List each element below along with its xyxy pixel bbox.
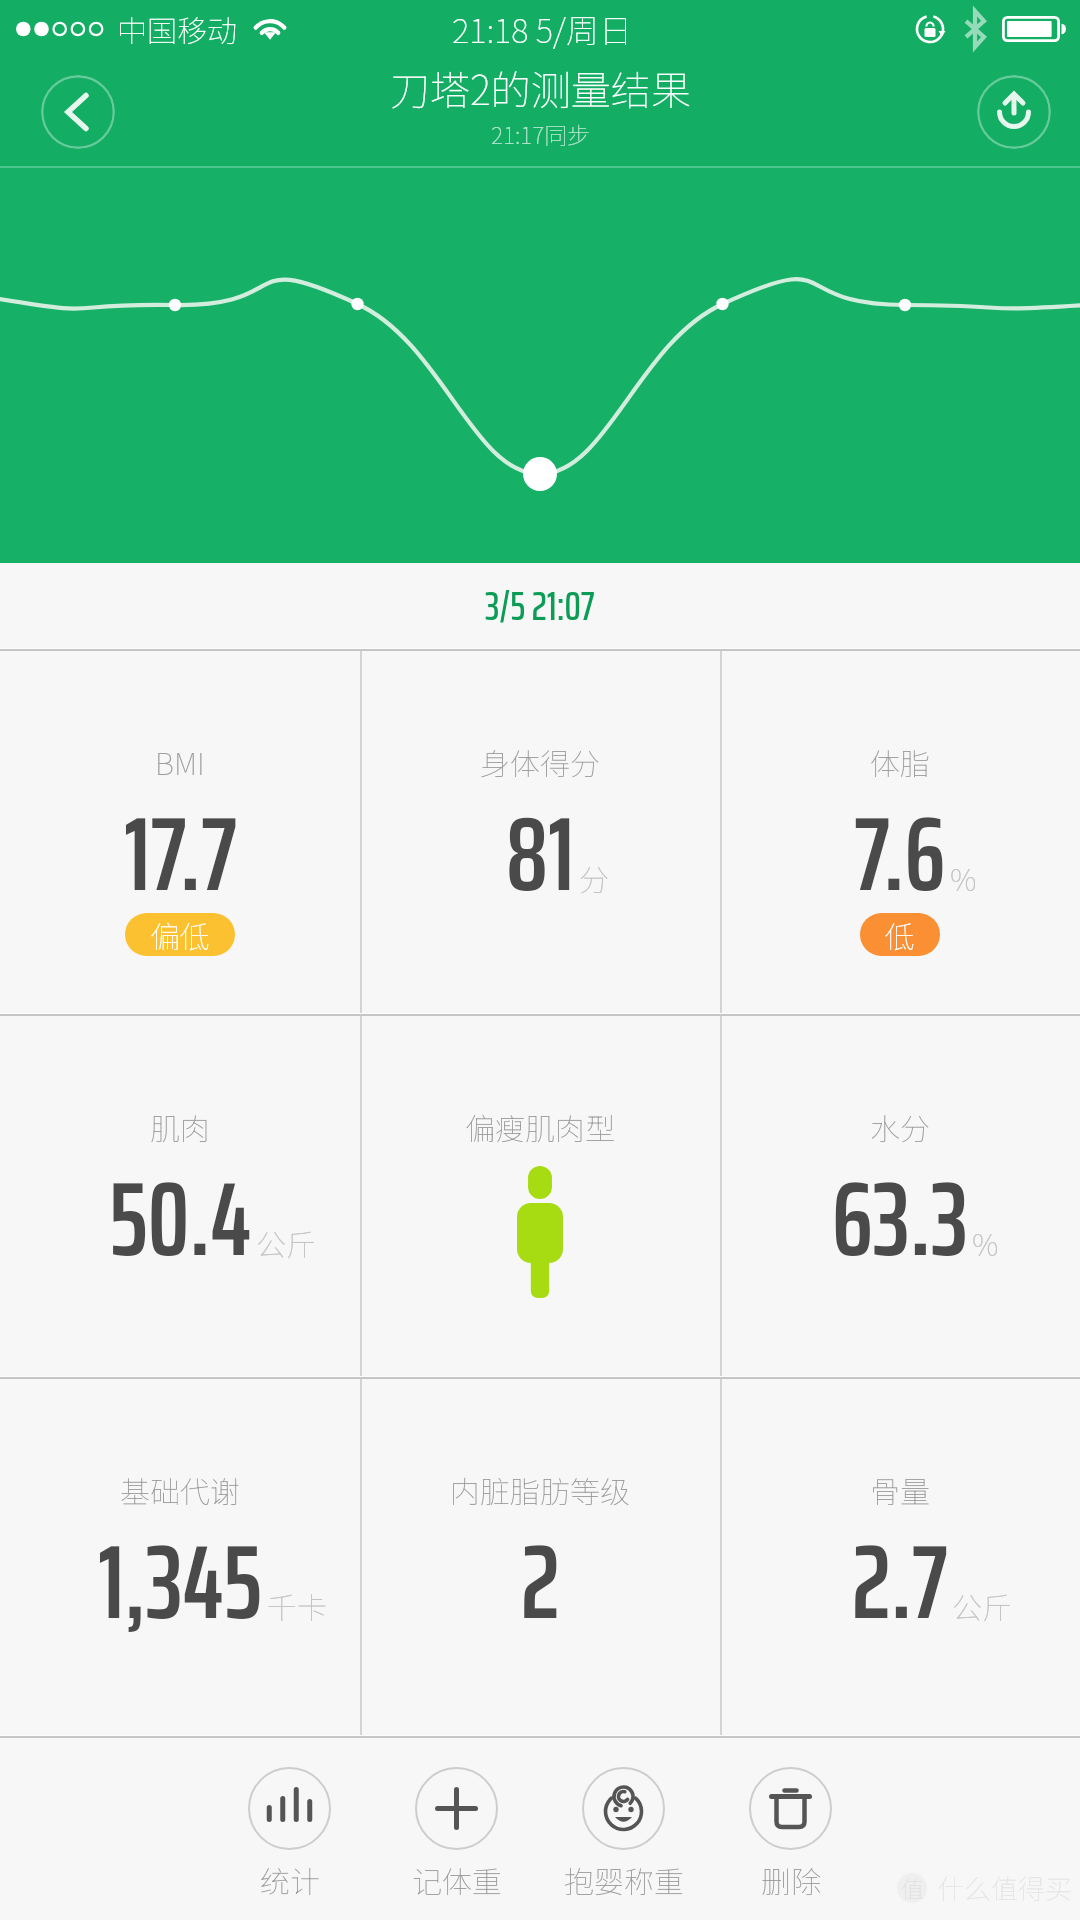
staticText: 记体重 [412,1858,502,1901]
staticText: 7.6 [854,772,946,936]
staticText: 刀塔2的测量结果 [390,59,691,117]
staticText: 分 [579,856,609,899]
staticText: 内脏脂肪等级 [450,1468,630,1511]
staticText: % [972,1221,999,1264]
staticText: 1,345 [98,1500,263,1664]
button[interactable]: 抱婴称重 [540,1767,707,1901]
staticText: 21:17同步 [491,117,591,150]
button[interactable]: 身体得分 [360,651,720,1013]
button[interactable]: 体脂 [720,651,1080,1013]
button[interactable]: 骨量 [720,1379,1080,1735]
staticText: 21:18 5/周日 [452,5,632,53]
staticText: 删除 [761,1858,821,1901]
button[interactable]: 肌肉 [0,1016,360,1376]
staticText: 值 [901,1871,924,1904]
staticText: 公斤 [952,1584,1012,1627]
staticText: 统计 [260,1858,320,1901]
staticText: 体脂 [870,740,930,783]
button[interactable]: 删除 [707,1767,874,1901]
staticText: 63.3 [832,1137,968,1301]
staticText: 肌肉 [150,1105,210,1148]
staticText: 17.7 [124,772,237,936]
button[interactable]: 偏瘦肌肉型 [360,1016,720,1376]
staticText: 偏瘦肌肉型 [465,1105,615,1148]
button[interactable]: 内脏脂肪等级 [360,1379,720,1735]
staticText: 公斤 [256,1221,316,1264]
staticText: 3/5 21:07 [485,573,595,638]
staticText: 身体得分 [480,740,600,783]
button[interactable]: 基础代谢 [0,1379,360,1735]
staticText: 81 [506,772,575,936]
staticText: 2.7 [852,1500,948,1664]
staticText: 低 [885,913,915,956]
staticText: 基础代谢 [120,1468,240,1511]
staticText: 中国移动 [117,7,237,50]
staticText: 抱婴称重 [564,1858,684,1901]
button[interactable]: 水分 [720,1016,1080,1376]
staticText: 什么值得买 [937,1868,1072,1907]
staticText: 2 [521,1500,560,1664]
button[interactable]: 统计 [206,1767,373,1901]
button[interactable]: BMI [0,651,360,1013]
staticText: 偏低 [150,913,210,956]
staticText: % [950,856,977,899]
button[interactable]: Back [41,75,115,149]
button[interactable]: Share [977,75,1051,149]
staticText: 骨量 [870,1468,930,1511]
staticText: BMI [155,740,205,783]
staticText: 千卡 [267,1584,327,1627]
button[interactable]: 记体重 [373,1767,540,1901]
staticText: 水分 [870,1105,930,1148]
staticText: 50.4 [109,1137,252,1301]
